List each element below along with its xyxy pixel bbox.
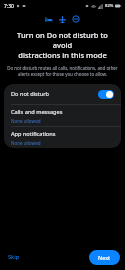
- staticText: Do not disturb mutes all calls, notifica…: [7, 65, 118, 77]
- button[interactable]: App notifications: [4, 127, 121, 148]
- staticText: App notifications: [11, 130, 56, 138]
- staticText: 7:30: [4, 3, 14, 10]
- staticText: None allowed: [11, 118, 41, 124]
- staticText: Calls and messages: [11, 108, 63, 116]
- staticText: Next: [98, 254, 111, 261]
- staticText: Turn on Do not disturb to avoid distract…: [8, 30, 117, 60]
- button[interactable]: Next: [89, 250, 120, 265]
- button[interactable]: Do not disturb: [4, 84, 121, 104]
- staticText: 82%: [105, 3, 114, 9]
- button[interactable]: Skip: [5, 250, 23, 264]
- staticText: None allowed: [11, 140, 41, 146]
- button[interactable]: Do not disturb toggle, on: [98, 90, 114, 99]
- button[interactable]: Calls and messages: [4, 105, 121, 126]
- staticText: Do not disturb: [11, 90, 50, 98]
- staticText: Skip: [8, 253, 20, 261]
